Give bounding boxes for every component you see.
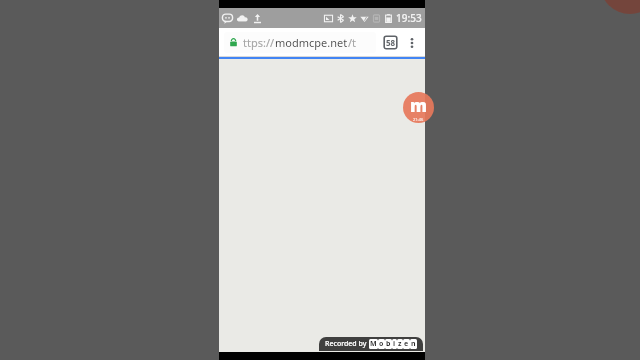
staticText: n — [411, 339, 416, 349]
button[interactable]: Switch tabs, 58 open — [383, 35, 398, 50]
staticText: o — [379, 339, 384, 349]
button[interactable]: ttps:// — [224, 32, 376, 53]
staticText: 21:46 — [413, 117, 424, 122]
staticText: modmcpe.net — [275, 35, 348, 50]
staticText: /t — [348, 35, 357, 50]
staticText: Recorded by — [325, 339, 369, 349]
staticText: z — [398, 339, 402, 349]
staticText: e — [404, 339, 409, 349]
staticText: 58 — [386, 37, 396, 48]
button[interactable]: Site badge — [403, 92, 434, 123]
staticText: M — [370, 339, 377, 349]
staticText: 19:53 — [396, 11, 422, 25]
staticText: ttps:// — [243, 35, 275, 50]
button[interactable]: More options — [404, 35, 420, 51]
staticText: b — [386, 339, 391, 349]
staticText: i — [393, 339, 396, 349]
staticText: m — [410, 94, 427, 117]
